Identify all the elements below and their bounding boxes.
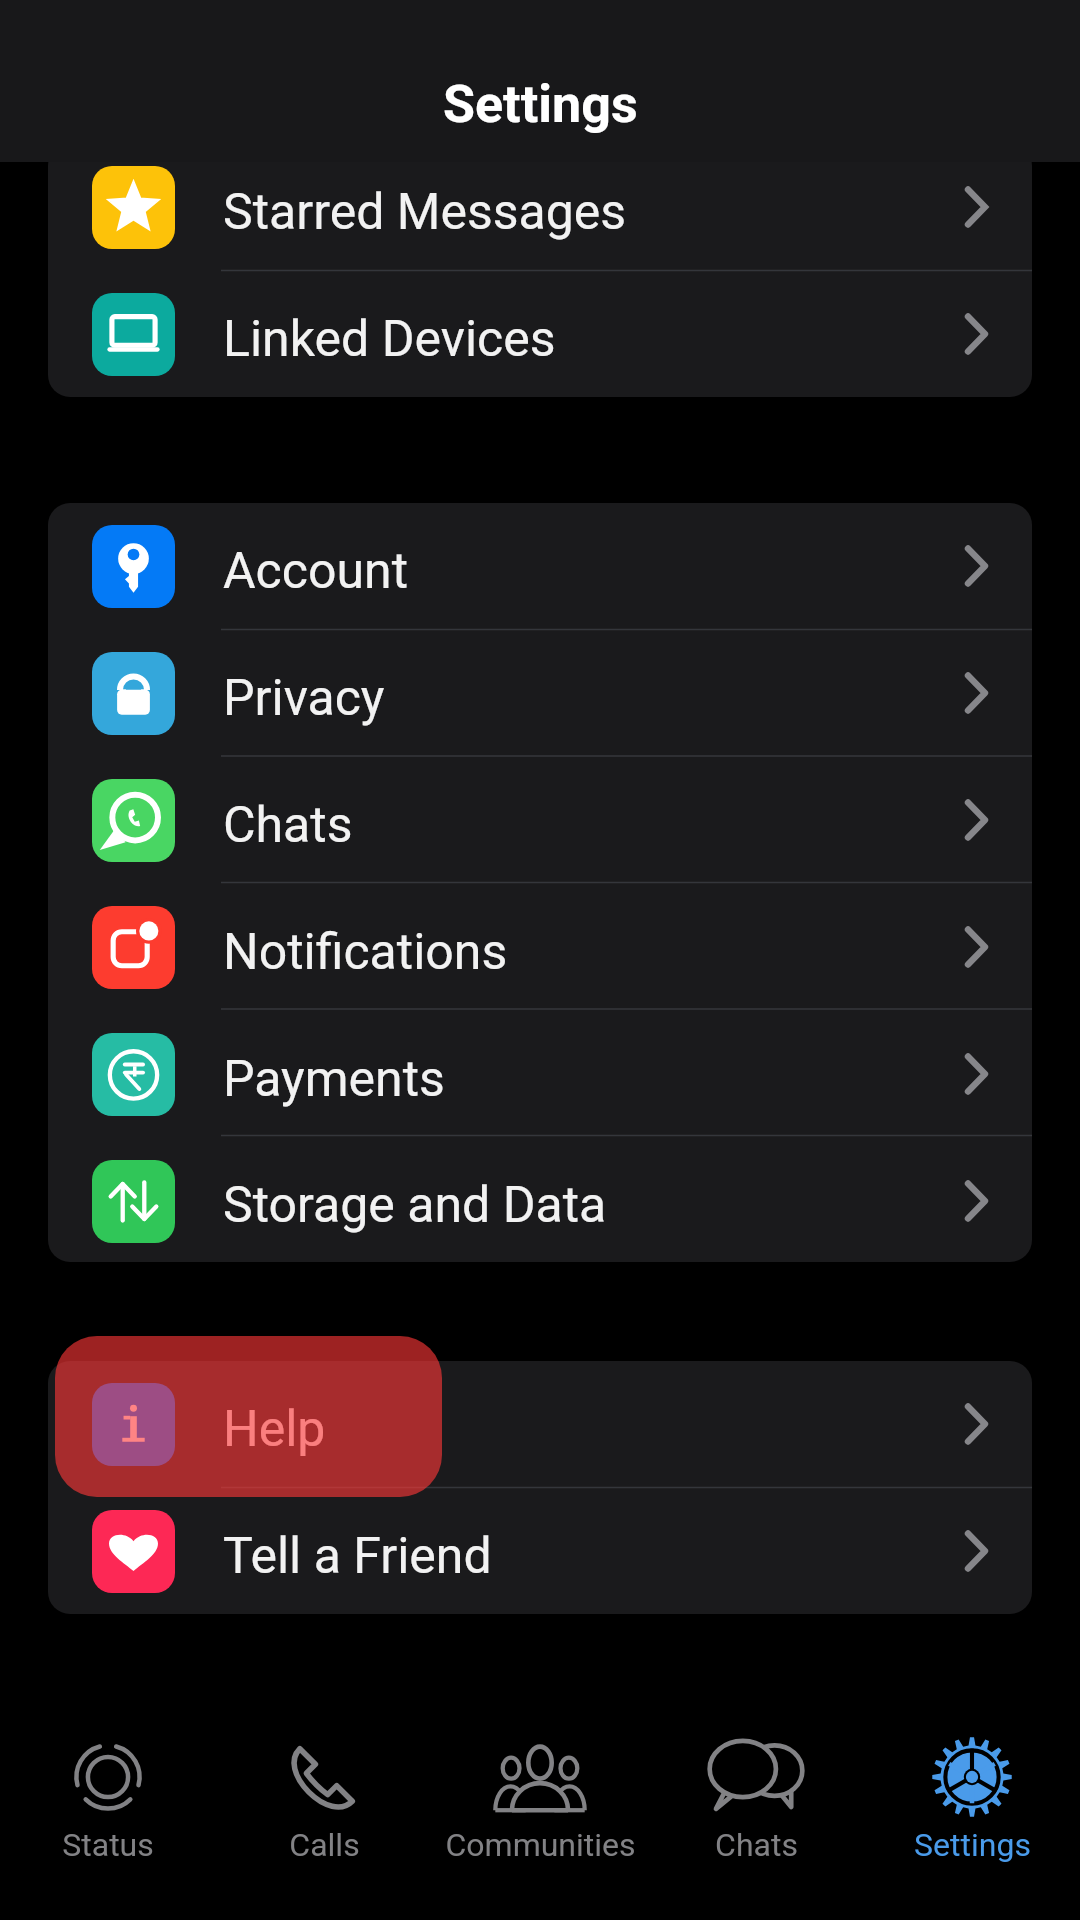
button[interactable]: Help: [48, 1361, 1032, 1488]
staticText: Notifications: [223, 923, 508, 982]
staticText: Tell a Friend: [223, 1527, 492, 1586]
button[interactable]: Account: [48, 503, 1032, 630]
staticText: Privacy: [223, 669, 385, 728]
button[interactable]: Communities: [432, 1710, 648, 1864]
staticText: Settings: [443, 74, 638, 135]
staticText: Starred Messages: [223, 183, 627, 242]
button[interactable]: Privacy: [48, 630, 1032, 757]
button[interactable]: Status: [0, 1710, 216, 1864]
button[interactable]: Linked Devices: [48, 271, 1032, 397]
staticText: Status: [62, 1826, 154, 1864]
staticText: Chats: [223, 796, 353, 855]
staticText: Calls: [289, 1826, 360, 1864]
button[interactable]: Chats: [648, 1710, 864, 1864]
staticText: Communities: [445, 1826, 636, 1864]
staticText: Linked Devices: [223, 310, 556, 369]
staticText: Storage and Data: [223, 1176, 607, 1235]
button[interactable]: Notifications: [48, 884, 1032, 1011]
staticText: Payments: [223, 1050, 445, 1109]
button[interactable]: Payments: [48, 1011, 1032, 1138]
staticText: Account: [223, 542, 409, 601]
button[interactable]: Tell a Friend: [48, 1488, 1032, 1614]
staticText: Settings: [914, 1826, 1031, 1864]
button[interactable]: Calls: [216, 1710, 432, 1864]
staticText: Help: [223, 1400, 326, 1459]
button[interactable]: Storage and Data: [48, 1138, 1032, 1262]
button[interactable]: Settings: [864, 1710, 1080, 1864]
staticText: Chats: [715, 1826, 798, 1864]
button[interactable]: Starred Messages: [48, 144, 1032, 271]
button[interactable]: Chats: [48, 757, 1032, 884]
